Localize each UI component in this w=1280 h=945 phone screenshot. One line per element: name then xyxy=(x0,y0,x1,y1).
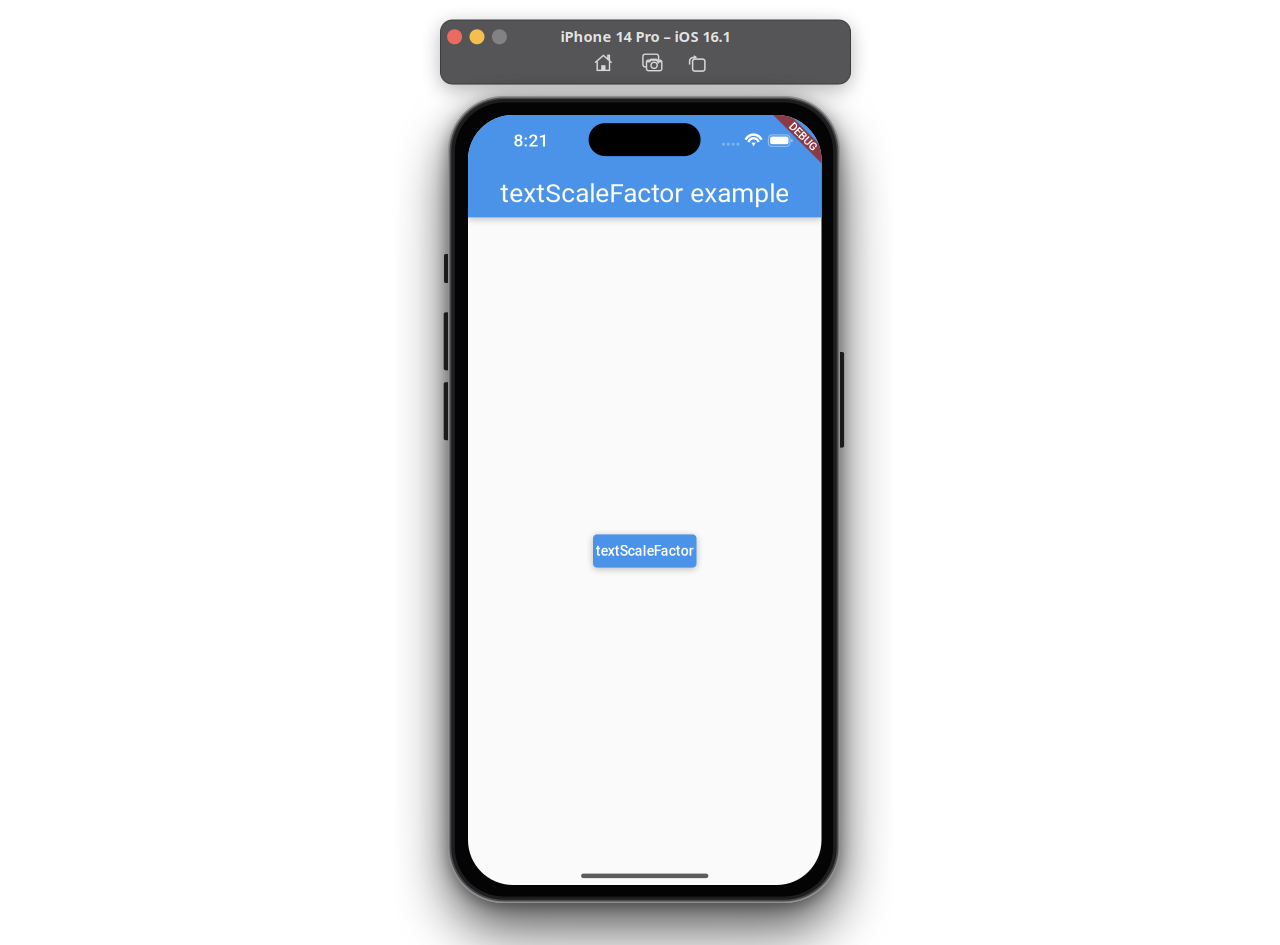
staticText: DEBUG xyxy=(787,127,821,140)
button[interactable]: Rotate xyxy=(688,55,705,71)
button[interactable]: Screenshot xyxy=(643,54,663,72)
staticText: iPhone 14 Pro – iOS 16.1 xyxy=(560,27,730,46)
button[interactable]: Home xyxy=(594,54,612,71)
button[interactable]: textScaleFactor xyxy=(593,534,696,568)
staticText: textScaleFactor example xyxy=(500,178,789,209)
staticText: 8:21 xyxy=(513,130,548,151)
staticText: textScaleFactor xyxy=(596,543,694,559)
